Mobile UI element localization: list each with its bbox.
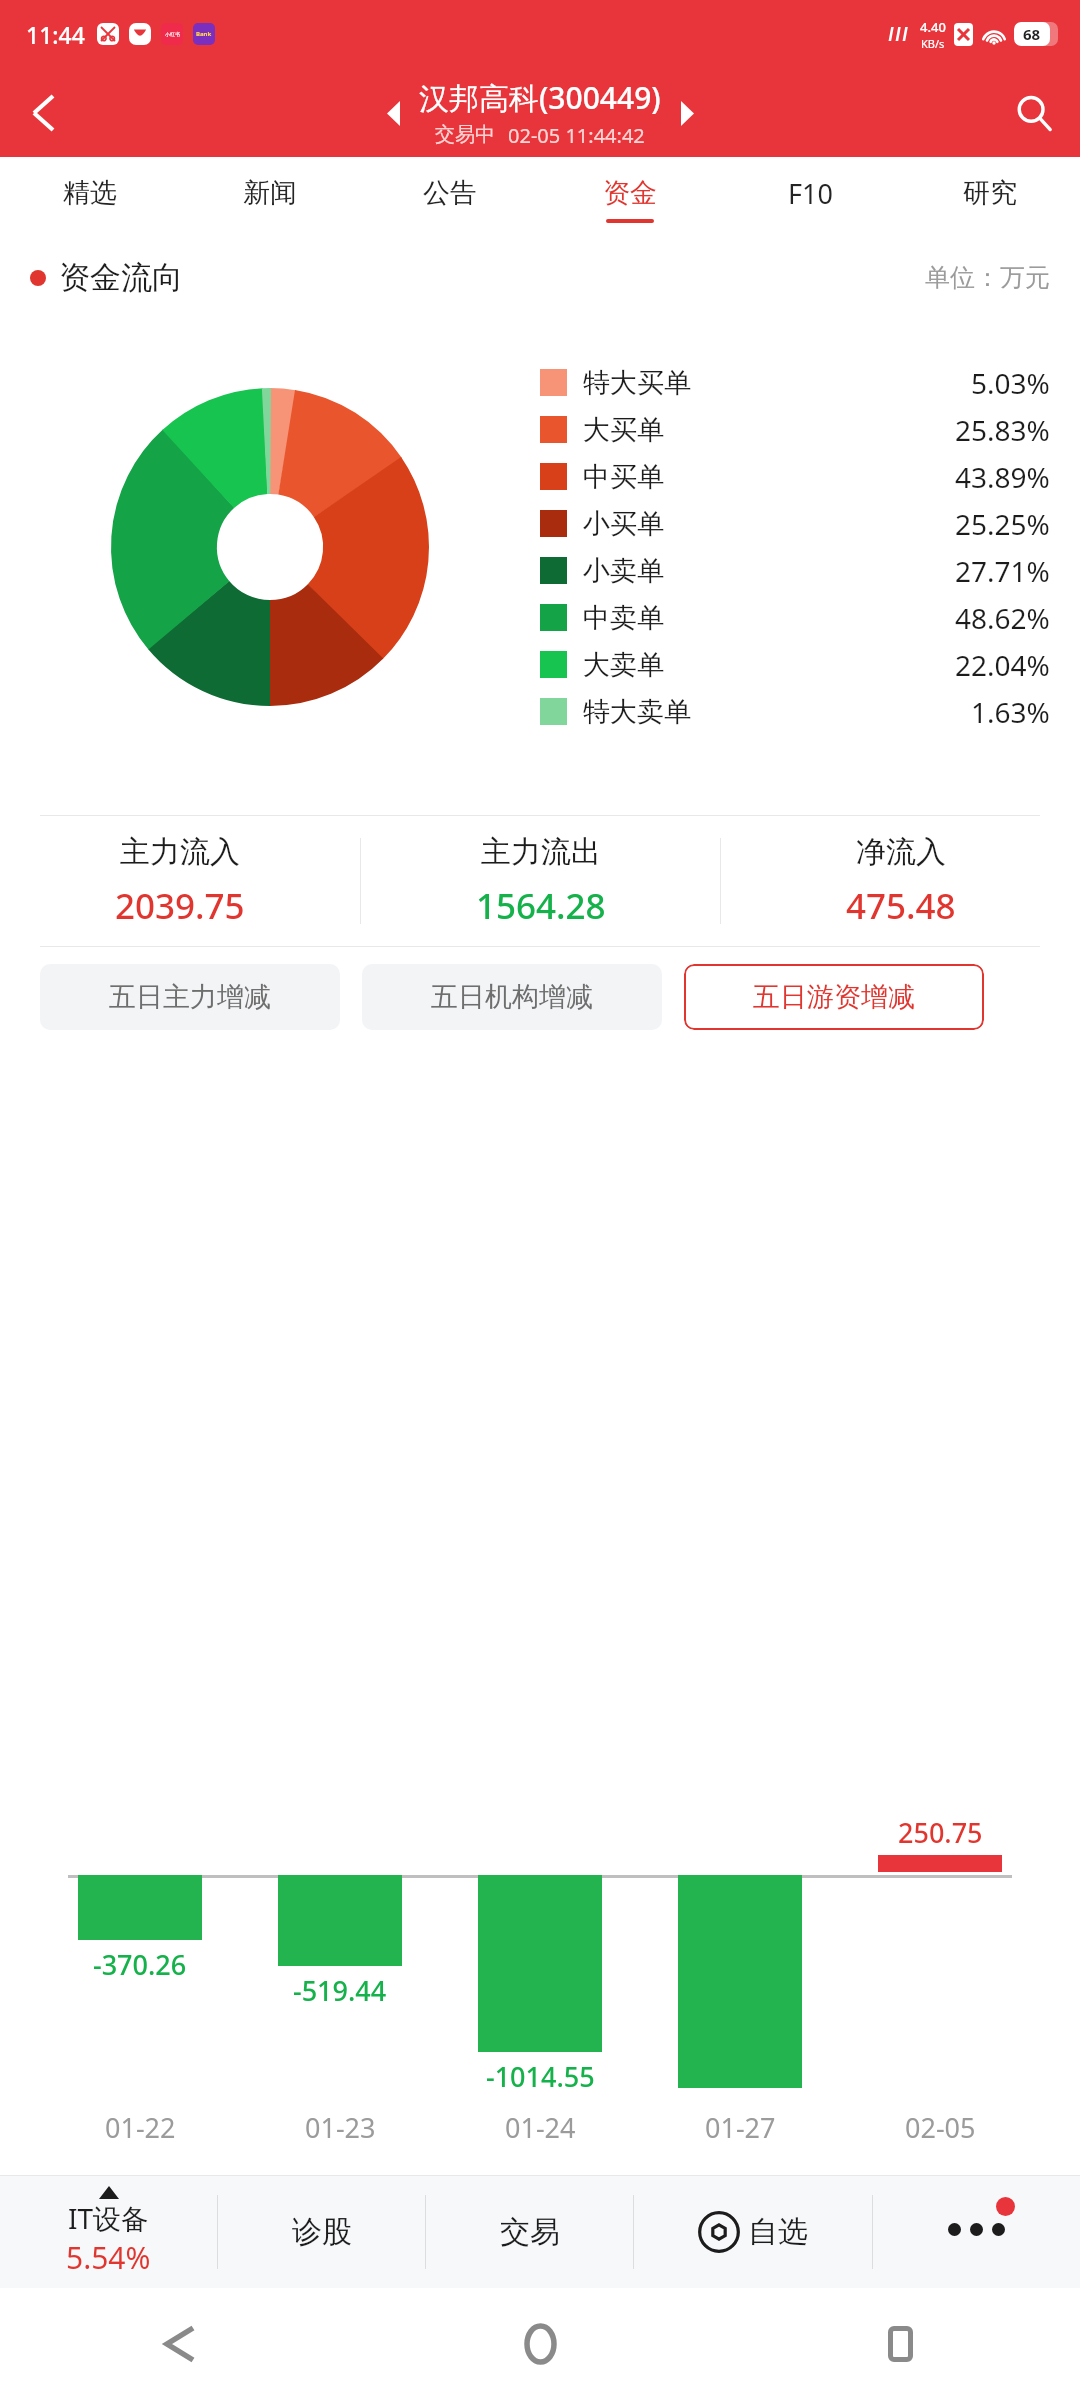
- staticText: 1564.28: [476, 882, 606, 930]
- staticText: 01-24: [505, 2109, 576, 2146]
- staticText: 净流入: [856, 833, 946, 871]
- staticText: 5.03%: [971, 364, 1050, 402]
- staticText: -519.44: [293, 1972, 387, 2009]
- staticText: 主力流入: [120, 833, 240, 871]
- staticText: IT设备: [68, 2199, 150, 2237]
- staticText: 25.83%: [955, 411, 1050, 449]
- staticText: 特大买单: [583, 366, 691, 400]
- staticText: 小卖单: [583, 554, 664, 588]
- button[interactable]: Previous stock: [367, 87, 419, 139]
- button[interactable]: 自选: [634, 2176, 872, 2288]
- staticText: 27.71%: [955, 552, 1050, 590]
- button[interactable]: 五日主力增减: [40, 964, 340, 1030]
- staticText: 11:44: [26, 19, 85, 50]
- staticText: 交易中: [435, 122, 495, 147]
- staticText: 2039.75: [115, 882, 245, 930]
- button[interactable]: -1014.55: [440, 1767, 640, 2097]
- staticText: 研究: [963, 176, 1017, 210]
- staticText: 单位：万元: [925, 262, 1050, 293]
- staticText: 主力流出: [481, 833, 601, 871]
- button[interactable]: Recents: [865, 2309, 935, 2379]
- button[interactable]: Back: [145, 2309, 215, 2379]
- staticText: 资金流向: [59, 258, 183, 297]
- staticText: 特大卖单: [583, 695, 691, 729]
- staticText: 1.63%: [971, 693, 1050, 731]
- button[interactable]: Next stock: [661, 87, 713, 139]
- staticText: 01-22: [105, 2109, 176, 2146]
- button[interactable]: IT设备: [0, 2176, 217, 2288]
- staticText: 大卖单: [583, 648, 664, 682]
- staticText: 交易: [500, 2213, 560, 2251]
- staticText: 250.75: [898, 1814, 983, 1851]
- staticText: 五日主力增减: [109, 980, 271, 1014]
- staticText: F10: [788, 175, 833, 212]
- button[interactable]: Search: [988, 68, 1080, 157]
- staticText: Bank: [196, 30, 212, 38]
- staticText: 公告: [423, 176, 477, 210]
- staticText: 22.04%: [955, 646, 1050, 684]
- staticText: 大买单: [583, 413, 664, 447]
- button[interactable]: 诊股: [218, 2176, 425, 2288]
- button[interactable]: -370.26: [40, 1767, 240, 2097]
- staticText: 中买单: [583, 460, 664, 494]
- staticText: 4.40: [920, 18, 946, 36]
- button[interactable]: 交易: [426, 2176, 633, 2288]
- staticText: 诊股: [292, 2213, 352, 2251]
- staticText: 02-05: [905, 2109, 976, 2146]
- button[interactable]: Home: [505, 2309, 575, 2379]
- staticText: 01-27: [705, 2109, 776, 2146]
- staticText: 68: [1023, 24, 1041, 44]
- button[interactable]: 250.75: [840, 1767, 1040, 2097]
- staticText: 中卖单: [583, 601, 664, 635]
- staticText: 02-05 11:44:42: [508, 122, 645, 149]
- staticText: 5.54%: [66, 2237, 151, 2278]
- button[interactable]: -1218.65: [640, 1767, 840, 2097]
- staticText: 43.89%: [955, 458, 1050, 496]
- button[interactable]: 主力流出: [361, 833, 720, 930]
- button[interactable]: 五日机构增减: [362, 964, 662, 1030]
- staticText: 自选: [748, 2213, 808, 2251]
- staticText: 01-23: [305, 2109, 376, 2146]
- staticText: 25.25%: [955, 505, 1050, 543]
- staticText: -370.26: [93, 1946, 187, 1983]
- staticText: 小红书: [165, 31, 180, 37]
- staticText: 新闻: [243, 176, 297, 210]
- button[interactable]: Back: [0, 70, 86, 156]
- button[interactable]: 主力流入: [0, 833, 360, 930]
- staticText: 汉邦高科(300449): [419, 77, 661, 118]
- staticText: 小买单: [583, 507, 664, 541]
- button[interactable]: -519.44: [240, 1767, 440, 2097]
- staticText: 五日游资增减: [753, 980, 915, 1014]
- button[interactable]: F10: [720, 157, 900, 242]
- staticText: 475.48: [846, 882, 956, 930]
- staticText: 48.62%: [955, 599, 1050, 637]
- button[interactable]: More: [873, 2176, 1080, 2288]
- staticText: 精选: [63, 176, 117, 210]
- button[interactable]: 资金: [540, 157, 720, 242]
- button[interactable]: 公告: [360, 157, 540, 242]
- button[interactable]: 净流入: [721, 833, 1080, 930]
- staticText: 资金: [603, 176, 657, 210]
- staticText: 五日机构增减: [431, 980, 593, 1014]
- staticText: KB/s: [921, 36, 945, 51]
- button[interactable]: 研究: [900, 157, 1080, 242]
- button[interactable]: 精选: [0, 157, 180, 242]
- button[interactable]: 五日游资增减: [684, 964, 984, 1030]
- button[interactable]: 新闻: [180, 157, 360, 242]
- staticText: -1014.55: [486, 2058, 595, 2095]
